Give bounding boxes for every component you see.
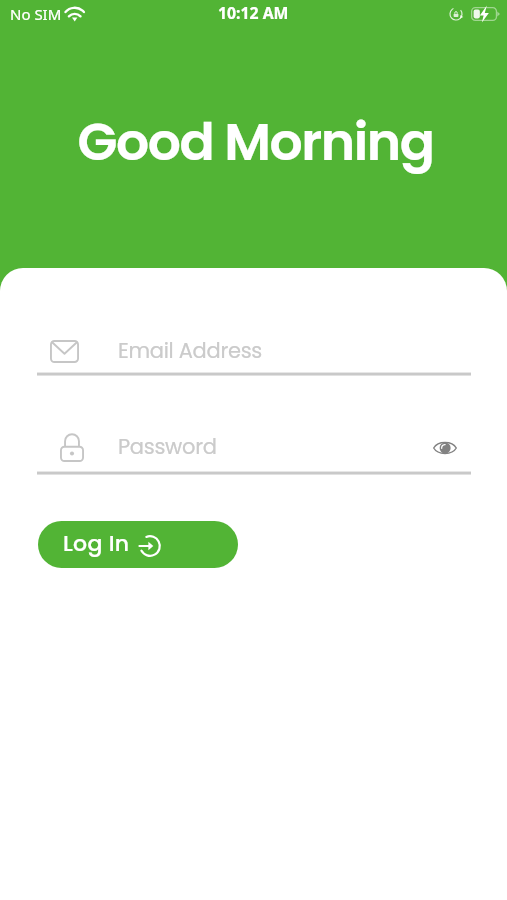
staticText: Email Address bbox=[118, 336, 262, 365]
button[interactable]: Log In bbox=[38, 521, 238, 568]
staticText: No SIM bbox=[10, 4, 62, 24]
staticText: 10:12 AM bbox=[218, 2, 289, 24]
button[interactable]: Password bbox=[37, 426, 471, 476]
staticText: Password bbox=[118, 432, 217, 461]
button[interactable]: Show password bbox=[424, 430, 466, 466]
staticText: Good Morning bbox=[2, 105, 507, 178]
button[interactable]: Email Address bbox=[37, 330, 471, 377]
staticText: Log In bbox=[63, 528, 130, 559]
